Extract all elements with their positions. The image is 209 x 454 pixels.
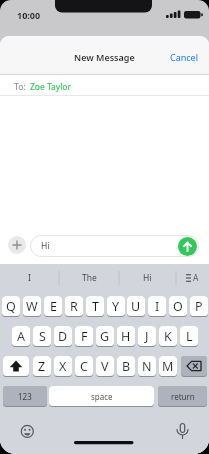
staticText: I [155,298,160,315]
button[interactable]: Z [33,356,51,377]
staticText: A [193,272,199,284]
button[interactable]: Hi [119,264,176,291]
button[interactable]: C [75,356,93,377]
staticText: T [92,298,99,315]
button[interactable]: F [75,326,93,347]
staticText: B [122,358,131,375]
button[interactable]: V [96,356,114,377]
button[interactable]: N [138,356,156,377]
button[interactable]: Y [107,296,125,317]
button[interactable]: T [86,296,104,317]
button[interactable]: J [138,326,156,347]
button[interactable]: U [127,296,145,317]
button[interactable]: Cancel [170,51,199,63]
button[interactable]: 123 [3,386,47,407]
staticText: To: [14,81,26,93]
staticText: N [142,358,152,375]
button[interactable]: To: [0,75,209,95]
staticText: The [82,272,97,284]
button[interactable] [178,237,197,256]
staticText: L [186,328,193,345]
staticText: X [59,358,67,375]
staticText: C [80,358,88,375]
button[interactable] [181,356,207,377]
button[interactable] [8,236,26,254]
button[interactable]: S [33,326,51,347]
button[interactable]: H [117,326,135,347]
staticText: Hi [143,272,152,284]
staticText: J [145,328,149,345]
button[interactable]: L [180,326,198,347]
button[interactable]: D [54,326,72,347]
button[interactable]: The [59,264,119,291]
staticText: G [100,328,110,345]
staticText: A [17,328,25,345]
staticText: S [39,328,46,345]
button[interactable]: K [159,326,177,347]
button[interactable]: P [190,296,208,317]
staticText: D [58,328,68,345]
button[interactable]: B [117,356,135,377]
staticText: P [195,298,203,315]
button[interactable]: G [96,326,114,347]
button[interactable]: M [159,356,177,377]
staticText: K [164,328,172,345]
staticText: 123 [18,391,32,402]
staticText: 10:00 [17,9,41,21]
button[interactable] [17,421,38,442]
staticText: Cancel [170,51,199,63]
button[interactable]: E [44,296,62,317]
staticText: V [101,358,109,375]
staticText: Hi [41,240,50,252]
staticText: U [131,298,141,315]
button[interactable]: A [176,264,209,291]
staticText: Q [6,298,16,315]
staticText: New Message [74,51,135,63]
staticText: F [81,328,88,345]
staticText: Y [112,298,120,315]
staticText: R [70,298,78,315]
staticText: Zoe Taylor [30,81,72,93]
button[interactable]: X [54,356,72,377]
staticText: E [50,298,57,315]
staticText: M [162,358,174,375]
button[interactable]: return [158,386,207,407]
button[interactable]: I [0,264,59,291]
staticText: W [26,298,38,315]
staticText: Z [38,358,46,375]
button[interactable]: space [49,386,154,407]
staticText: space [91,391,113,402]
button[interactable] [172,419,193,440]
button[interactable]: W [23,296,41,317]
button[interactable]: R [65,296,83,317]
staticText: return [171,391,195,402]
button[interactable]: A [12,326,30,347]
button[interactable]: Q [2,296,20,317]
staticText: I [28,272,31,284]
button[interactable]: O [169,296,187,317]
button[interactable]: I [148,296,166,317]
staticText: O [173,298,183,315]
staticText: H [121,328,131,345]
button[interactable] [3,356,29,377]
